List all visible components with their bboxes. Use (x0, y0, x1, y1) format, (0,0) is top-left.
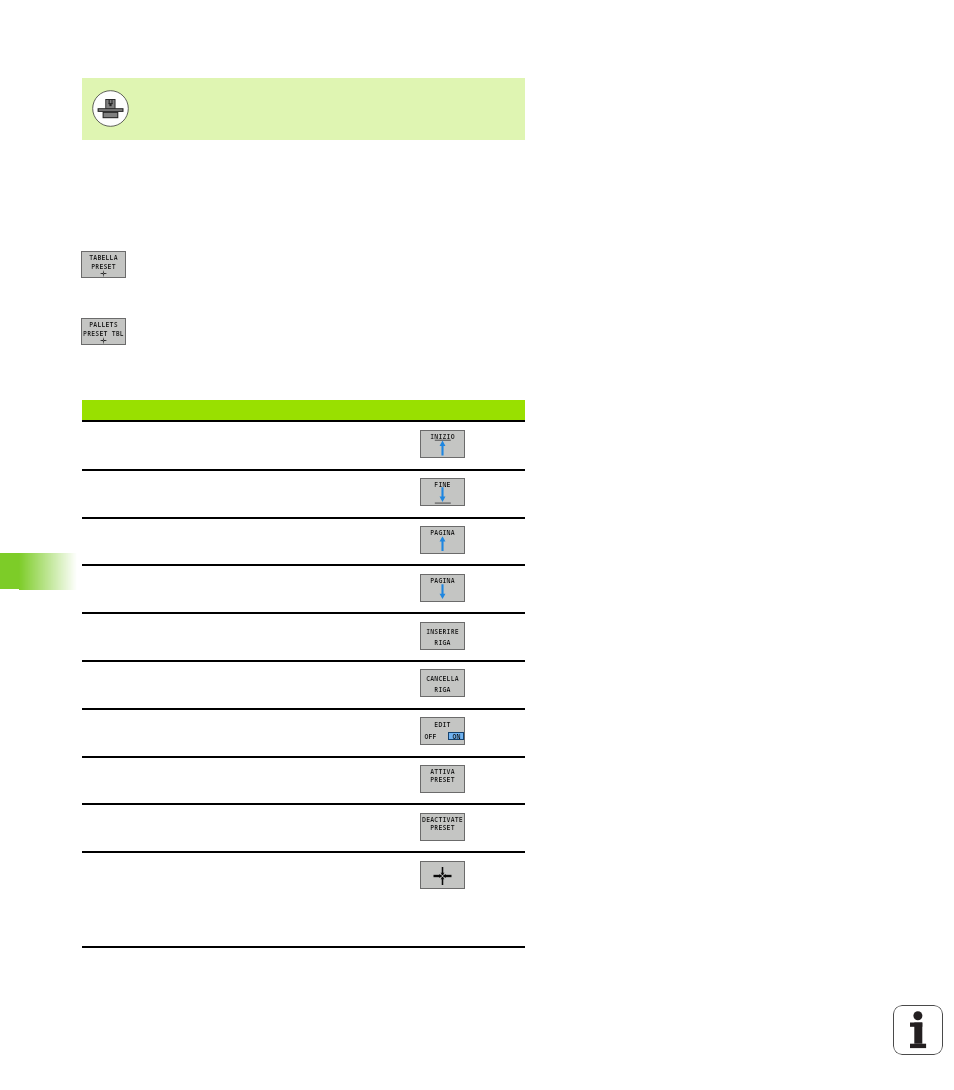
button[interactable]: Deactivate preset (420, 813, 465, 841)
button[interactable]: Edit on or off (420, 717, 465, 745)
staticText: TABELLA (89, 253, 118, 262)
staticText: EDIT (434, 720, 451, 729)
button[interactable]: Delete row (420, 669, 465, 697)
staticText: RIGA (434, 638, 451, 647)
staticText: OFF (424, 732, 437, 741)
button[interactable]: Information (893, 1005, 943, 1055)
button[interactable]: PALLETS PRESET TBL (81, 318, 126, 345)
staticText: PALLETS (89, 320, 118, 329)
staticText: PAGINA (430, 576, 455, 585)
staticText: ATTIVA (430, 767, 455, 776)
staticText: INIZIO (430, 432, 455, 441)
staticText: RIGA (434, 685, 451, 694)
staticText: PRESET (430, 775, 455, 784)
staticText: PRESET TBL (83, 329, 124, 338)
other: Machine tool (92, 90, 129, 127)
staticText: INSERIRE (426, 627, 459, 636)
button[interactable]: Insert row (420, 622, 465, 650)
button[interactable]: Activate preset (420, 765, 465, 793)
staticText: ON (452, 732, 461, 740)
staticText: PRESET (430, 823, 455, 832)
staticText: CANCELLA (426, 674, 459, 683)
button[interactable]: Page up (420, 526, 465, 554)
staticText: PRESET (91, 262, 116, 271)
button[interactable]: Refer to your machine manual (82, 78, 525, 140)
button[interactable]: Go to end of table (420, 478, 465, 506)
staticText: PAGINA (430, 528, 455, 537)
button[interactable]: Page down (420, 574, 465, 602)
button[interactable]: Set datum (420, 861, 465, 889)
staticText: DEACTIVATE (422, 815, 463, 824)
button[interactable]: TABELLA PRESET (81, 251, 126, 278)
button[interactable]: Go to beginning of table (420, 430, 465, 458)
staticText: FINE (434, 480, 451, 489)
